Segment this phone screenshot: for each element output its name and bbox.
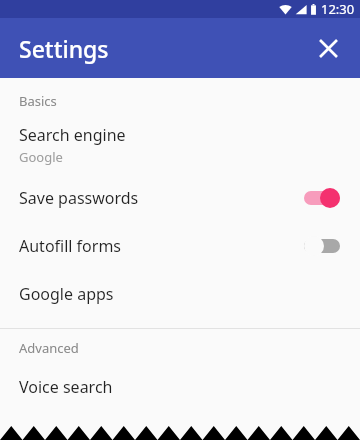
staticText: Autofill forms	[19, 235, 304, 257]
staticText: Search engine	[19, 124, 126, 146]
staticText: Settings	[19, 33, 109, 64]
button[interactable]: Save passwords	[0, 174, 360, 222]
button[interactable]: Search engine	[0, 116, 360, 174]
button[interactable]: Google apps	[0, 270, 360, 318]
staticText: Save passwords	[19, 187, 304, 209]
button[interactable]: Autofill forms	[0, 222, 360, 270]
staticText: Google apps	[19, 283, 114, 305]
button[interactable]: Voice search	[0, 363, 360, 411]
staticText: Google	[19, 148, 63, 166]
staticText: 12:30	[321, 0, 355, 18]
staticText: Basics	[19, 92, 57, 110]
staticText: Voice search	[19, 376, 113, 398]
button[interactable]: Close settings	[308, 28, 348, 68]
staticText: Advanced	[19, 339, 79, 357]
